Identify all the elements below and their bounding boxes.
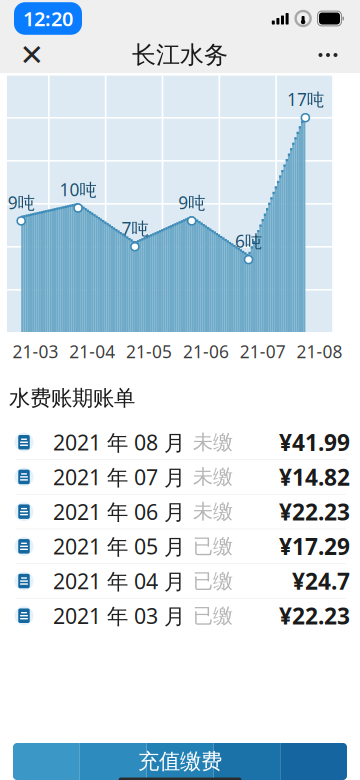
button[interactable]: 充值缴费 bbox=[13, 743, 347, 780]
staticText: 水费账期账单 bbox=[9, 385, 135, 411]
staticText: 10吨 bbox=[59, 178, 96, 201]
button[interactable]: 2021 年 08 月 bbox=[0, 425, 360, 459]
staticText: 21-08 bbox=[297, 340, 343, 363]
staticText: 2021 年 05 月 bbox=[53, 532, 185, 560]
button[interactable]: 2021 年 05 月 bbox=[0, 529, 360, 563]
staticText: ✕ bbox=[19, 38, 44, 72]
staticText: 已缴 bbox=[193, 534, 233, 559]
staticText: 21-05 bbox=[126, 340, 172, 363]
staticText: 6吨 bbox=[235, 230, 262, 253]
staticText: 12:20 bbox=[23, 5, 73, 32]
staticText: ¥22.23 bbox=[279, 601, 350, 631]
staticText: 2021 年 03 月 bbox=[53, 602, 185, 630]
button[interactable]: 2021 年 04 月 bbox=[0, 564, 360, 598]
staticText: 17吨 bbox=[287, 88, 324, 111]
staticText: ¥17.29 bbox=[279, 531, 350, 561]
button[interactable]: 2021 年 06 月 bbox=[0, 495, 360, 529]
button[interactable]: 更多 bbox=[306, 37, 350, 73]
staticText: 7吨 bbox=[121, 217, 148, 240]
button[interactable]: 2021 年 07 月 bbox=[0, 460, 360, 494]
staticText: 长江水务 bbox=[132, 40, 228, 70]
staticText: ¥14.82 bbox=[279, 462, 350, 492]
staticText: 充值缴费 bbox=[138, 748, 222, 775]
button[interactable]: 关闭 bbox=[10, 37, 54, 73]
button[interactable]: 2021 年 03 月 bbox=[0, 599, 360, 633]
staticText: 21-07 bbox=[240, 340, 286, 363]
staticText: ¥22.23 bbox=[279, 497, 350, 527]
staticText: 未缴 bbox=[193, 499, 233, 524]
staticText: 2021 年 07 月 bbox=[53, 463, 185, 491]
staticText: 21-04 bbox=[69, 340, 115, 363]
staticText: 2021 年 06 月 bbox=[53, 497, 185, 526]
staticText: 21-03 bbox=[12, 340, 58, 363]
staticText: 2021 年 08 月 bbox=[53, 428, 185, 456]
staticText: 已缴 bbox=[193, 603, 233, 628]
staticText: 9吨 bbox=[8, 191, 35, 214]
staticText: 已缴 bbox=[193, 569, 233, 593]
staticText: 21-06 bbox=[183, 340, 229, 363]
staticText: 未缴 bbox=[193, 430, 233, 454]
staticText: ¥41.99 bbox=[279, 427, 350, 457]
staticText: 2021 年 04 月 bbox=[53, 567, 185, 595]
staticText: 9吨 bbox=[178, 191, 205, 214]
staticText: 未缴 bbox=[193, 465, 233, 489]
staticText: ¥24.7 bbox=[292, 566, 350, 596]
